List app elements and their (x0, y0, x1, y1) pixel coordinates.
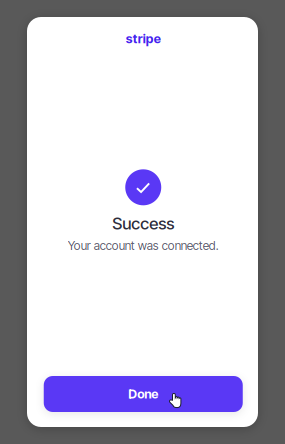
staticText: Success (112, 213, 174, 233)
button[interactable]: Done (44, 376, 243, 412)
staticText: Your account was connected. (68, 238, 219, 253)
staticText: Done (128, 386, 158, 402)
staticText: stripe (126, 31, 161, 46)
